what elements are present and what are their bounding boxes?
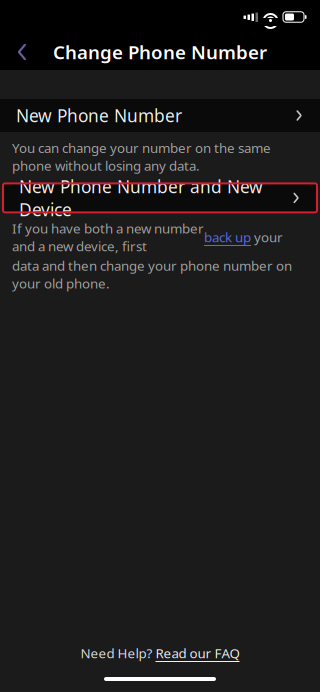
staticText: Need Help? [80, 644, 155, 662]
staticText: New Phone Number and New Device [19, 175, 263, 221]
button[interactable]: New Phone Number and New Device [3, 183, 317, 212]
staticText: your [251, 228, 283, 246]
button[interactable]: Back [0, 34, 44, 70]
staticText: back up [204, 228, 251, 246]
button[interactable]: Need Help? [70, 640, 249, 666]
staticText: Change Phone Number [53, 40, 267, 64]
staticText: If you have both a new number and a new … [12, 219, 204, 255]
staticText: data and then change your phone number o… [12, 257, 292, 292]
staticText: You can change your number on the same p… [12, 139, 271, 174]
staticText: New Phone Number [16, 104, 182, 127]
button[interactable]: New Phone Number [0, 99, 320, 132]
staticText: Read our FAQ [155, 644, 239, 662]
